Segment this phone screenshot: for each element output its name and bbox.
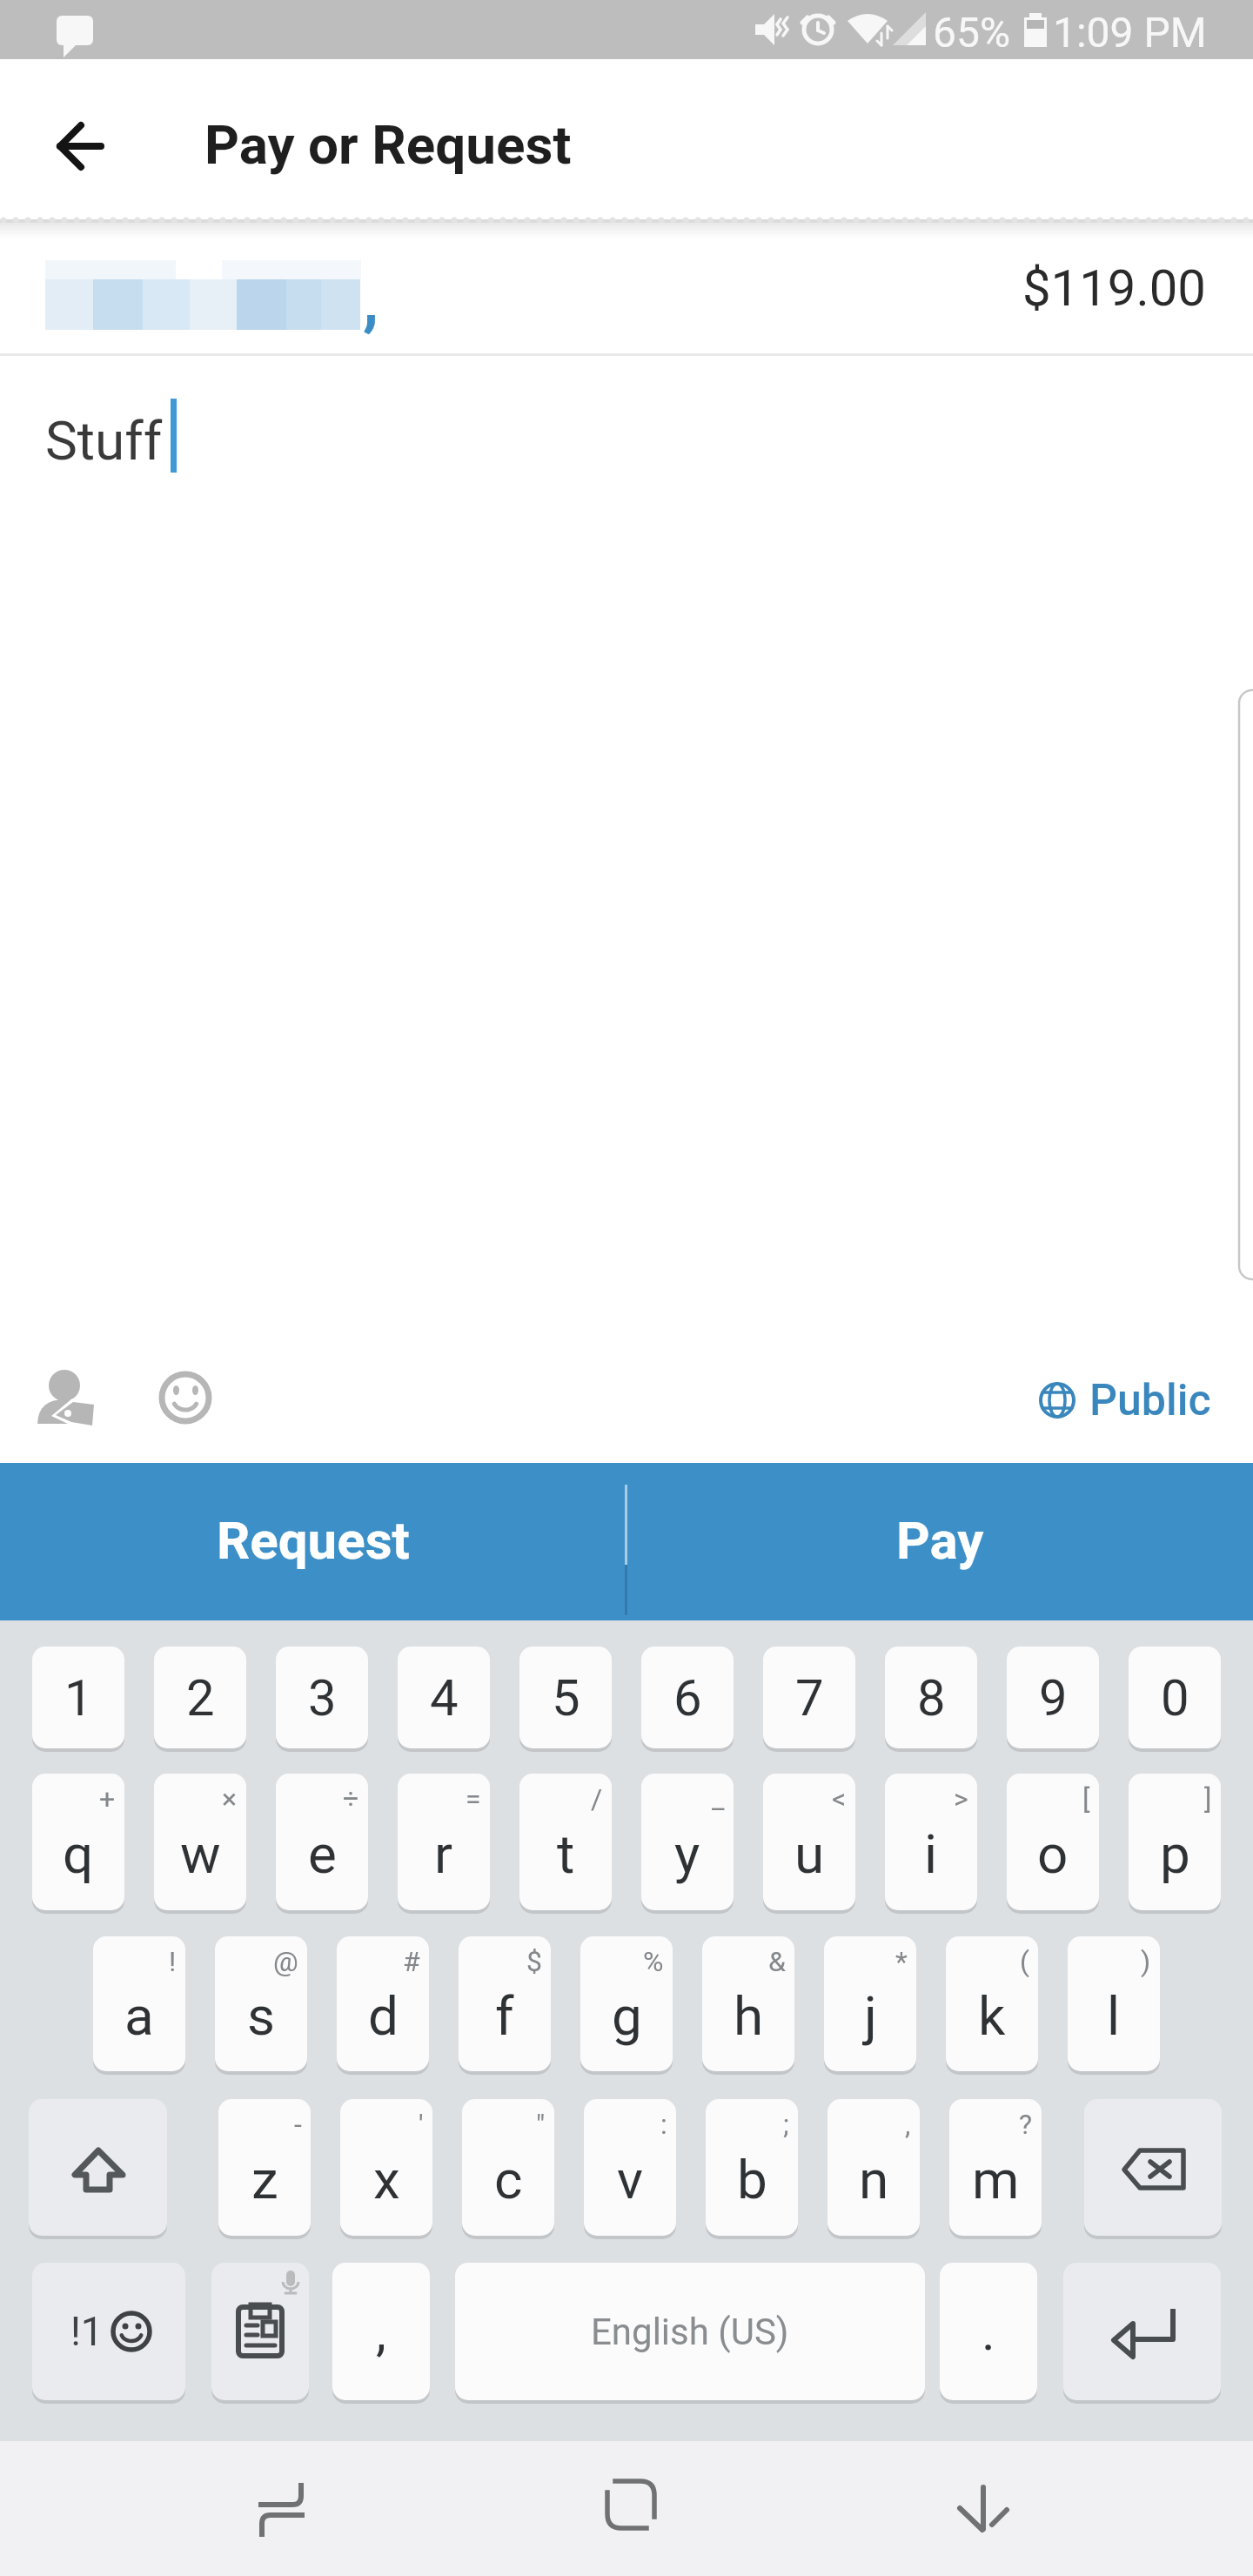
staticText: b	[737, 2148, 767, 2211]
staticText: 6	[673, 1668, 702, 1727]
staticText: e	[308, 1822, 337, 1886]
staticText: &	[768, 1945, 786, 1978]
staticText: 9	[1039, 1668, 1068, 1727]
staticText: -	[294, 2108, 302, 2141]
staticText: 2	[186, 1668, 215, 1727]
staticText: ,	[376, 2301, 386, 2362]
staticText: o	[1037, 1822, 1069, 1886]
staticText: 8	[917, 1668, 946, 1727]
staticText: j	[864, 1984, 877, 2048]
staticText: ,	[905, 2108, 911, 2141]
staticText: 5	[552, 1668, 580, 1727]
staticText: Pay	[896, 1510, 984, 1571]
staticText: _	[712, 1782, 725, 1815]
staticText: s	[247, 1984, 275, 2048]
staticText: *	[895, 1945, 908, 1978]
staticText: ]	[1204, 1782, 1212, 1815]
staticText: "	[536, 2108, 546, 2141]
staticText: x	[373, 2148, 400, 2211]
staticText: @	[273, 1945, 298, 1978]
staticText: ×	[222, 1782, 238, 1815]
staticText: Request	[217, 1510, 410, 1571]
staticText: 1:09 PM	[1053, 8, 1207, 57]
staticText: m	[972, 2148, 1020, 2211]
staticText: g	[612, 1984, 642, 2048]
staticText: w	[180, 1822, 221, 1886]
staticText: Stuff	[45, 409, 163, 473]
staticText: .	[982, 2301, 995, 2362]
staticText: ,	[363, 263, 379, 339]
staticText: d	[368, 1984, 399, 2048]
staticText: )	[1141, 1945, 1151, 1978]
staticText: q	[63, 1822, 94, 1886]
staticText: 3	[308, 1668, 337, 1727]
staticText: +	[99, 1782, 116, 1815]
staticText: h	[734, 1984, 764, 2048]
staticText: r	[434, 1822, 453, 1886]
staticText: !	[169, 1945, 177, 1978]
staticText: $119.00	[1022, 258, 1206, 318]
staticText: p	[1160, 1822, 1190, 1886]
staticText: [	[1082, 1782, 1090, 1815]
staticText: $	[526, 1945, 542, 1978]
staticText: 4	[430, 1668, 459, 1727]
staticText: Public	[1089, 1375, 1211, 1426]
staticText: 7	[795, 1668, 824, 1727]
staticText: c	[494, 2148, 523, 2211]
staticText: =	[466, 1782, 481, 1815]
staticText: i	[924, 1822, 938, 1886]
staticText: #	[403, 1945, 420, 1978]
staticText: (	[1020, 1945, 1029, 1978]
staticText: English (US)	[591, 2311, 789, 2353]
staticText: n	[859, 2148, 889, 2211]
staticText: !1	[70, 2308, 104, 2355]
staticText: Pay or Request	[204, 113, 572, 177]
staticText: 1	[64, 1668, 93, 1727]
staticText: ?	[1019, 2108, 1033, 2141]
staticText: z	[251, 2148, 278, 2211]
staticText: l	[1107, 1984, 1121, 2048]
staticText: ;	[783, 2108, 789, 2141]
staticText: >	[954, 1782, 968, 1815]
staticText: ÷	[343, 1782, 359, 1815]
staticText: v	[617, 2148, 644, 2211]
staticText: u	[794, 1822, 825, 1886]
staticText: :	[660, 2108, 667, 2141]
staticText: y	[674, 1822, 700, 1886]
staticText: 65%	[933, 8, 1011, 57]
staticText: /	[591, 1782, 603, 1815]
staticText: %	[643, 1945, 664, 1978]
staticText: 0	[1161, 1668, 1189, 1727]
staticText: '	[419, 2108, 424, 2141]
staticText: a	[124, 1984, 154, 2048]
staticText: <	[832, 1782, 847, 1815]
staticText: t	[557, 1822, 575, 1886]
staticText: k	[978, 1984, 1006, 2048]
staticText: f	[495, 1984, 514, 2048]
